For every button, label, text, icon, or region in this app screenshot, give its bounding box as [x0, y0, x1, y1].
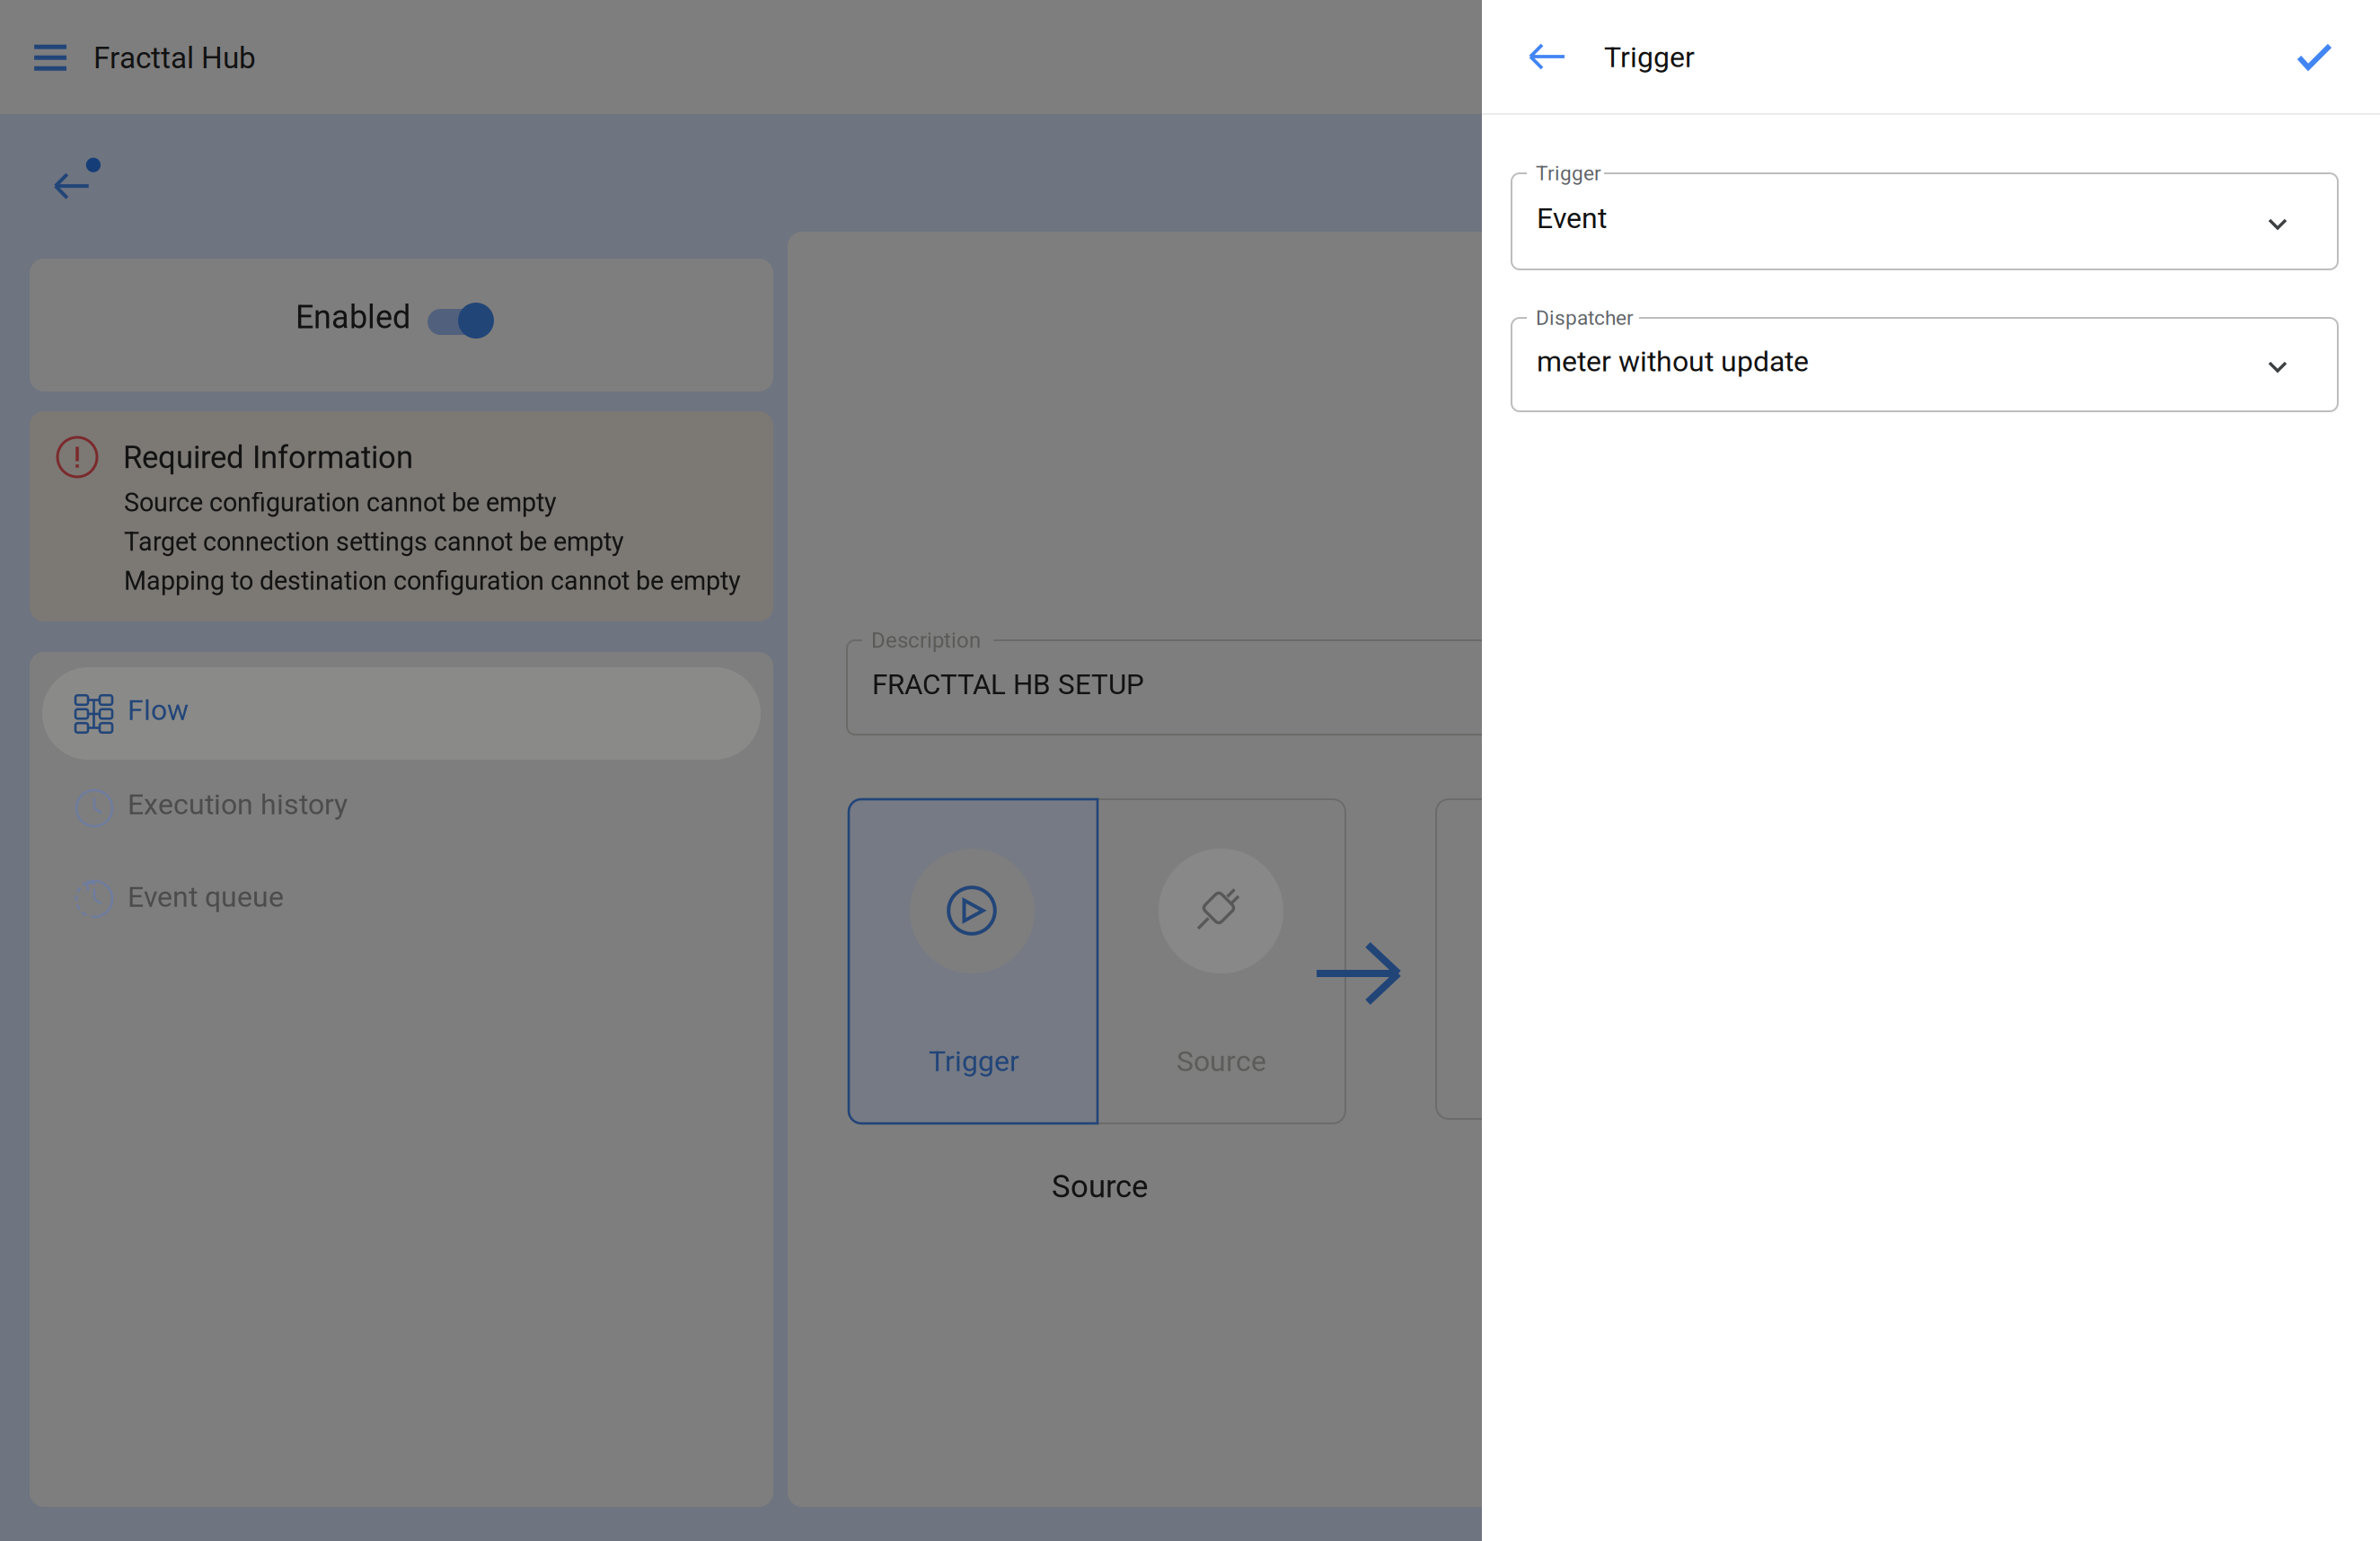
button[interactable]: Confirm: [1482, 0, 1568, 77]
staticText: Dispatcher: [1536, 306, 1634, 330]
button[interactable]: Back: [1482, 0, 1568, 77]
staticText: Description: [871, 628, 981, 653]
staticText: Mapping to destination configuration can…: [124, 566, 741, 596]
staticText: Trigger: [1536, 161, 1601, 185]
staticText: Event queue: [128, 880, 284, 914]
button[interactable]: Dispatcher: [1482, 0, 2308, 93]
staticText: Target connection settings cannot be emp…: [124, 527, 624, 557]
button[interactable]: Back: [0, 0, 81, 81]
staticText: Trigger: [1604, 40, 1695, 74]
staticText: meter without update: [1537, 345, 1809, 378]
button[interactable]: Event queue: [30, 854, 736, 947]
staticText: Execution history: [128, 788, 348, 821]
staticText: Fracttal Hub: [93, 40, 256, 76]
button[interactable]: Enabled: [30, 259, 773, 392]
button[interactable]: Execution history: [30, 762, 736, 855]
staticText: Required Information: [123, 439, 413, 476]
button[interactable]: Source: [849, 799, 1097, 1123]
staticText: Source configuration cannot be empty: [124, 488, 557, 518]
button[interactable]: Menu: [0, 0, 86, 72]
staticText: Flow: [128, 693, 189, 727]
staticText: Source: [1052, 1168, 1148, 1205]
button[interactable]: Flow: [30, 667, 736, 761]
button[interactable]: Trigger: [849, 799, 1097, 1123]
staticText: Enabled: [295, 298, 410, 336]
staticText: Event: [1537, 202, 1607, 235]
staticText: Source: [1177, 1044, 1266, 1078]
staticText: FRACTTAL HB SETUP: [872, 668, 1144, 701]
staticText: Trigger: [929, 1044, 1019, 1078]
button[interactable]: Trigger: [1482, 0, 2308, 96]
